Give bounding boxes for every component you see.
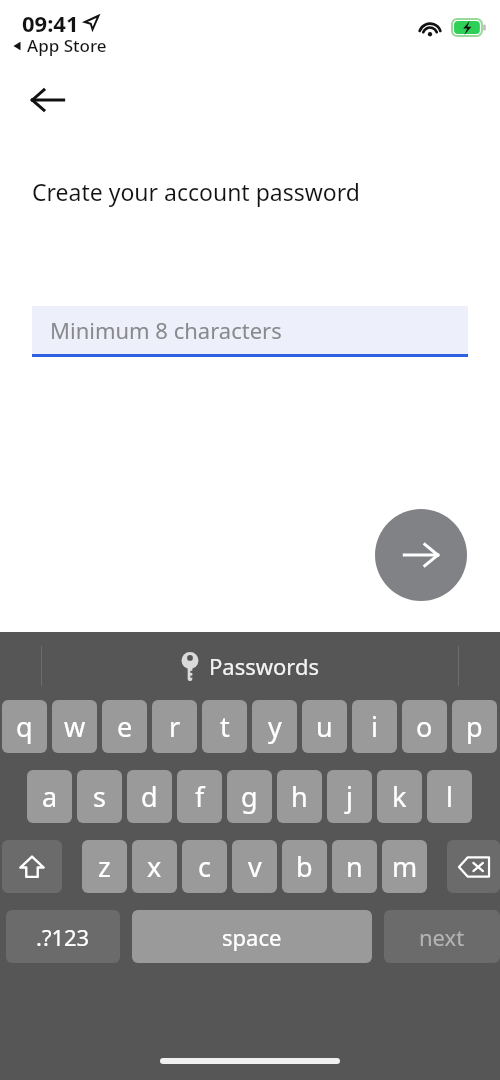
staticText: n <box>346 848 363 885</box>
button[interactable]: h <box>277 770 322 823</box>
button[interactable]: Back <box>20 72 76 128</box>
button[interactable]: q <box>2 700 47 753</box>
button[interactable]: Passwords <box>181 651 320 681</box>
staticText: d <box>141 778 158 815</box>
button[interactable]: n <box>332 840 377 893</box>
staticText: o <box>416 708 433 745</box>
button[interactable]: t <box>202 700 247 753</box>
button[interactable]: Shift <box>2 840 62 893</box>
staticText: m <box>392 848 418 885</box>
button[interactable]: s <box>77 770 122 823</box>
staticText: v <box>248 848 262 885</box>
staticText: e <box>117 708 133 745</box>
button[interactable]: Minimum 8 characters <box>32 306 468 357</box>
button[interactable]: o <box>402 700 447 753</box>
button[interactable]: d <box>127 770 172 823</box>
button[interactable]: next <box>384 910 500 963</box>
button[interactable]: f <box>177 770 222 823</box>
button[interactable]: b <box>282 840 327 893</box>
button[interactable]: v <box>232 840 277 893</box>
staticText: g <box>241 778 258 815</box>
button[interactable]: space <box>132 910 372 963</box>
staticText: App Store <box>27 34 107 57</box>
staticText: 09:41 <box>22 8 79 38</box>
staticText: x <box>147 848 162 885</box>
staticText: a <box>42 778 58 815</box>
button[interactable]: k <box>377 770 422 823</box>
staticText: i <box>371 708 378 745</box>
button[interactable]: j <box>327 770 372 823</box>
staticText: y <box>268 708 282 745</box>
button[interactable]: c <box>182 840 227 893</box>
button[interactable]: p <box>452 700 497 753</box>
staticText: l <box>446 778 453 815</box>
staticText: c <box>198 848 211 885</box>
button[interactable]: l <box>427 770 472 823</box>
staticText: s <box>93 778 106 815</box>
staticText: p <box>466 708 483 745</box>
button[interactable]: w <box>52 700 97 753</box>
staticText: next <box>419 922 465 952</box>
button[interactable]: y <box>252 700 297 753</box>
staticText: h <box>291 778 308 815</box>
button[interactable]: i <box>352 700 397 753</box>
staticText: w <box>64 708 86 745</box>
staticText: Create your account password <box>32 176 360 207</box>
staticText: q <box>16 708 33 745</box>
staticText: k <box>392 778 407 815</box>
button[interactable]: a <box>27 770 72 823</box>
button[interactable]: e <box>102 700 147 753</box>
button[interactable]: u <box>302 700 347 753</box>
button[interactable]: m <box>382 840 427 893</box>
staticText: .?123 <box>36 922 90 952</box>
staticText: z <box>98 848 111 885</box>
staticText: r <box>169 708 181 745</box>
staticText: f <box>195 778 205 815</box>
staticText: t <box>220 708 230 745</box>
button[interactable]: Next <box>375 509 467 601</box>
button[interactable]: Backspace <box>447 840 500 893</box>
staticText: space <box>222 922 282 952</box>
staticText: j <box>346 778 353 815</box>
staticText: u <box>316 708 333 745</box>
button[interactable]: z <box>82 840 127 893</box>
button[interactable]: x <box>132 840 177 893</box>
staticText: b <box>296 848 313 885</box>
button[interactable]: .?123 <box>6 910 120 963</box>
button[interactable]: g <box>227 770 272 823</box>
staticText: Minimum 8 characters <box>50 315 282 345</box>
staticText: Passwords <box>209 651 320 681</box>
button[interactable]: r <box>152 700 197 753</box>
